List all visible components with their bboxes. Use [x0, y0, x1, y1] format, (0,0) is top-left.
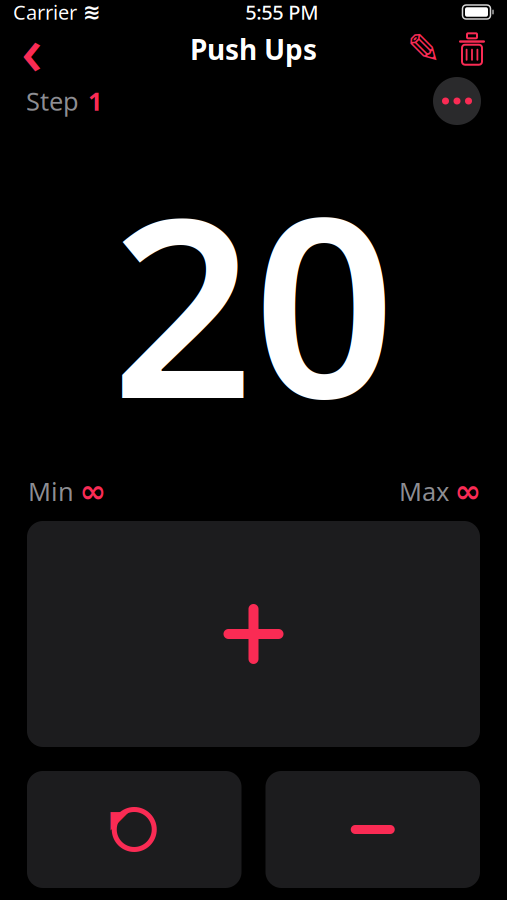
- staticText: 5:55 PM: [245, 0, 318, 25]
- staticText: Push Ups: [190, 30, 317, 68]
- staticText: 20: [111, 137, 395, 466]
- staticText: ✎: [406, 26, 441, 72]
- button[interactable]: Edit: [400, 32, 448, 65]
- staticText: ◤: [110, 805, 128, 833]
- staticText: Max: [399, 474, 449, 508]
- staticText: ≋: [83, 0, 101, 24]
- button[interactable]: Increment: [27, 521, 480, 747]
- button[interactable]: More options: [433, 77, 481, 125]
- button[interactable]: Reset: [27, 771, 241, 888]
- staticText: ∞: [79, 473, 106, 509]
- staticText: Min: [28, 474, 74, 508]
- staticText: ‹: [21, 5, 43, 93]
- button[interactable]: Delete: [448, 32, 496, 65]
- staticText: 1: [88, 84, 102, 118]
- staticText: Step: [26, 84, 79, 118]
- staticText: Carrier: [13, 0, 77, 25]
- staticText: ∞: [454, 473, 481, 509]
- button[interactable]: Back: [11, 30, 53, 68]
- button[interactable]: Decrement: [265, 771, 480, 888]
